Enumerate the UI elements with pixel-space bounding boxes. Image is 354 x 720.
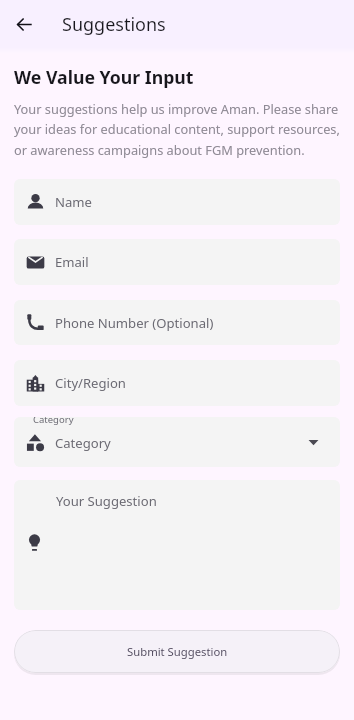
staticText: Name (55, 193, 92, 211)
staticText: Your suggestions help us improve Aman. P… (14, 100, 340, 159)
staticText: City/Region (55, 374, 126, 392)
staticText: We Value Your Input (14, 65, 194, 89)
staticText: Phone Number (Optional) (55, 314, 214, 332)
staticText: Category (33, 417, 74, 426)
button[interactable]: Submit Suggestion (14, 630, 340, 673)
staticText: Email (55, 253, 89, 271)
staticText: Your Suggestion (56, 492, 157, 510)
button[interactable]: Phone Number (Optional) (14, 300, 340, 345)
button[interactable]: City/Region (14, 360, 340, 406)
button[interactable]: Email (14, 239, 340, 285)
button[interactable]: Category (14, 417, 340, 467)
button[interactable]: Back (6, 6, 42, 42)
staticText: Suggestions (62, 12, 166, 37)
staticText: Category (55, 434, 111, 452)
staticText: Submit Suggestion (127, 644, 228, 659)
button[interactable]: Your Suggestion (14, 480, 340, 610)
button[interactable]: Name (14, 179, 340, 225)
